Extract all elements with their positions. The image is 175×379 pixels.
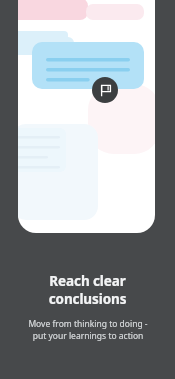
button[interactable] [32,42,144,89]
staticText: Move from thinking to doing - put your l… [28,318,148,342]
button[interactable]: Flag conclusion [92,77,118,103]
staticText: Reach clear conclusions [14,272,161,308]
